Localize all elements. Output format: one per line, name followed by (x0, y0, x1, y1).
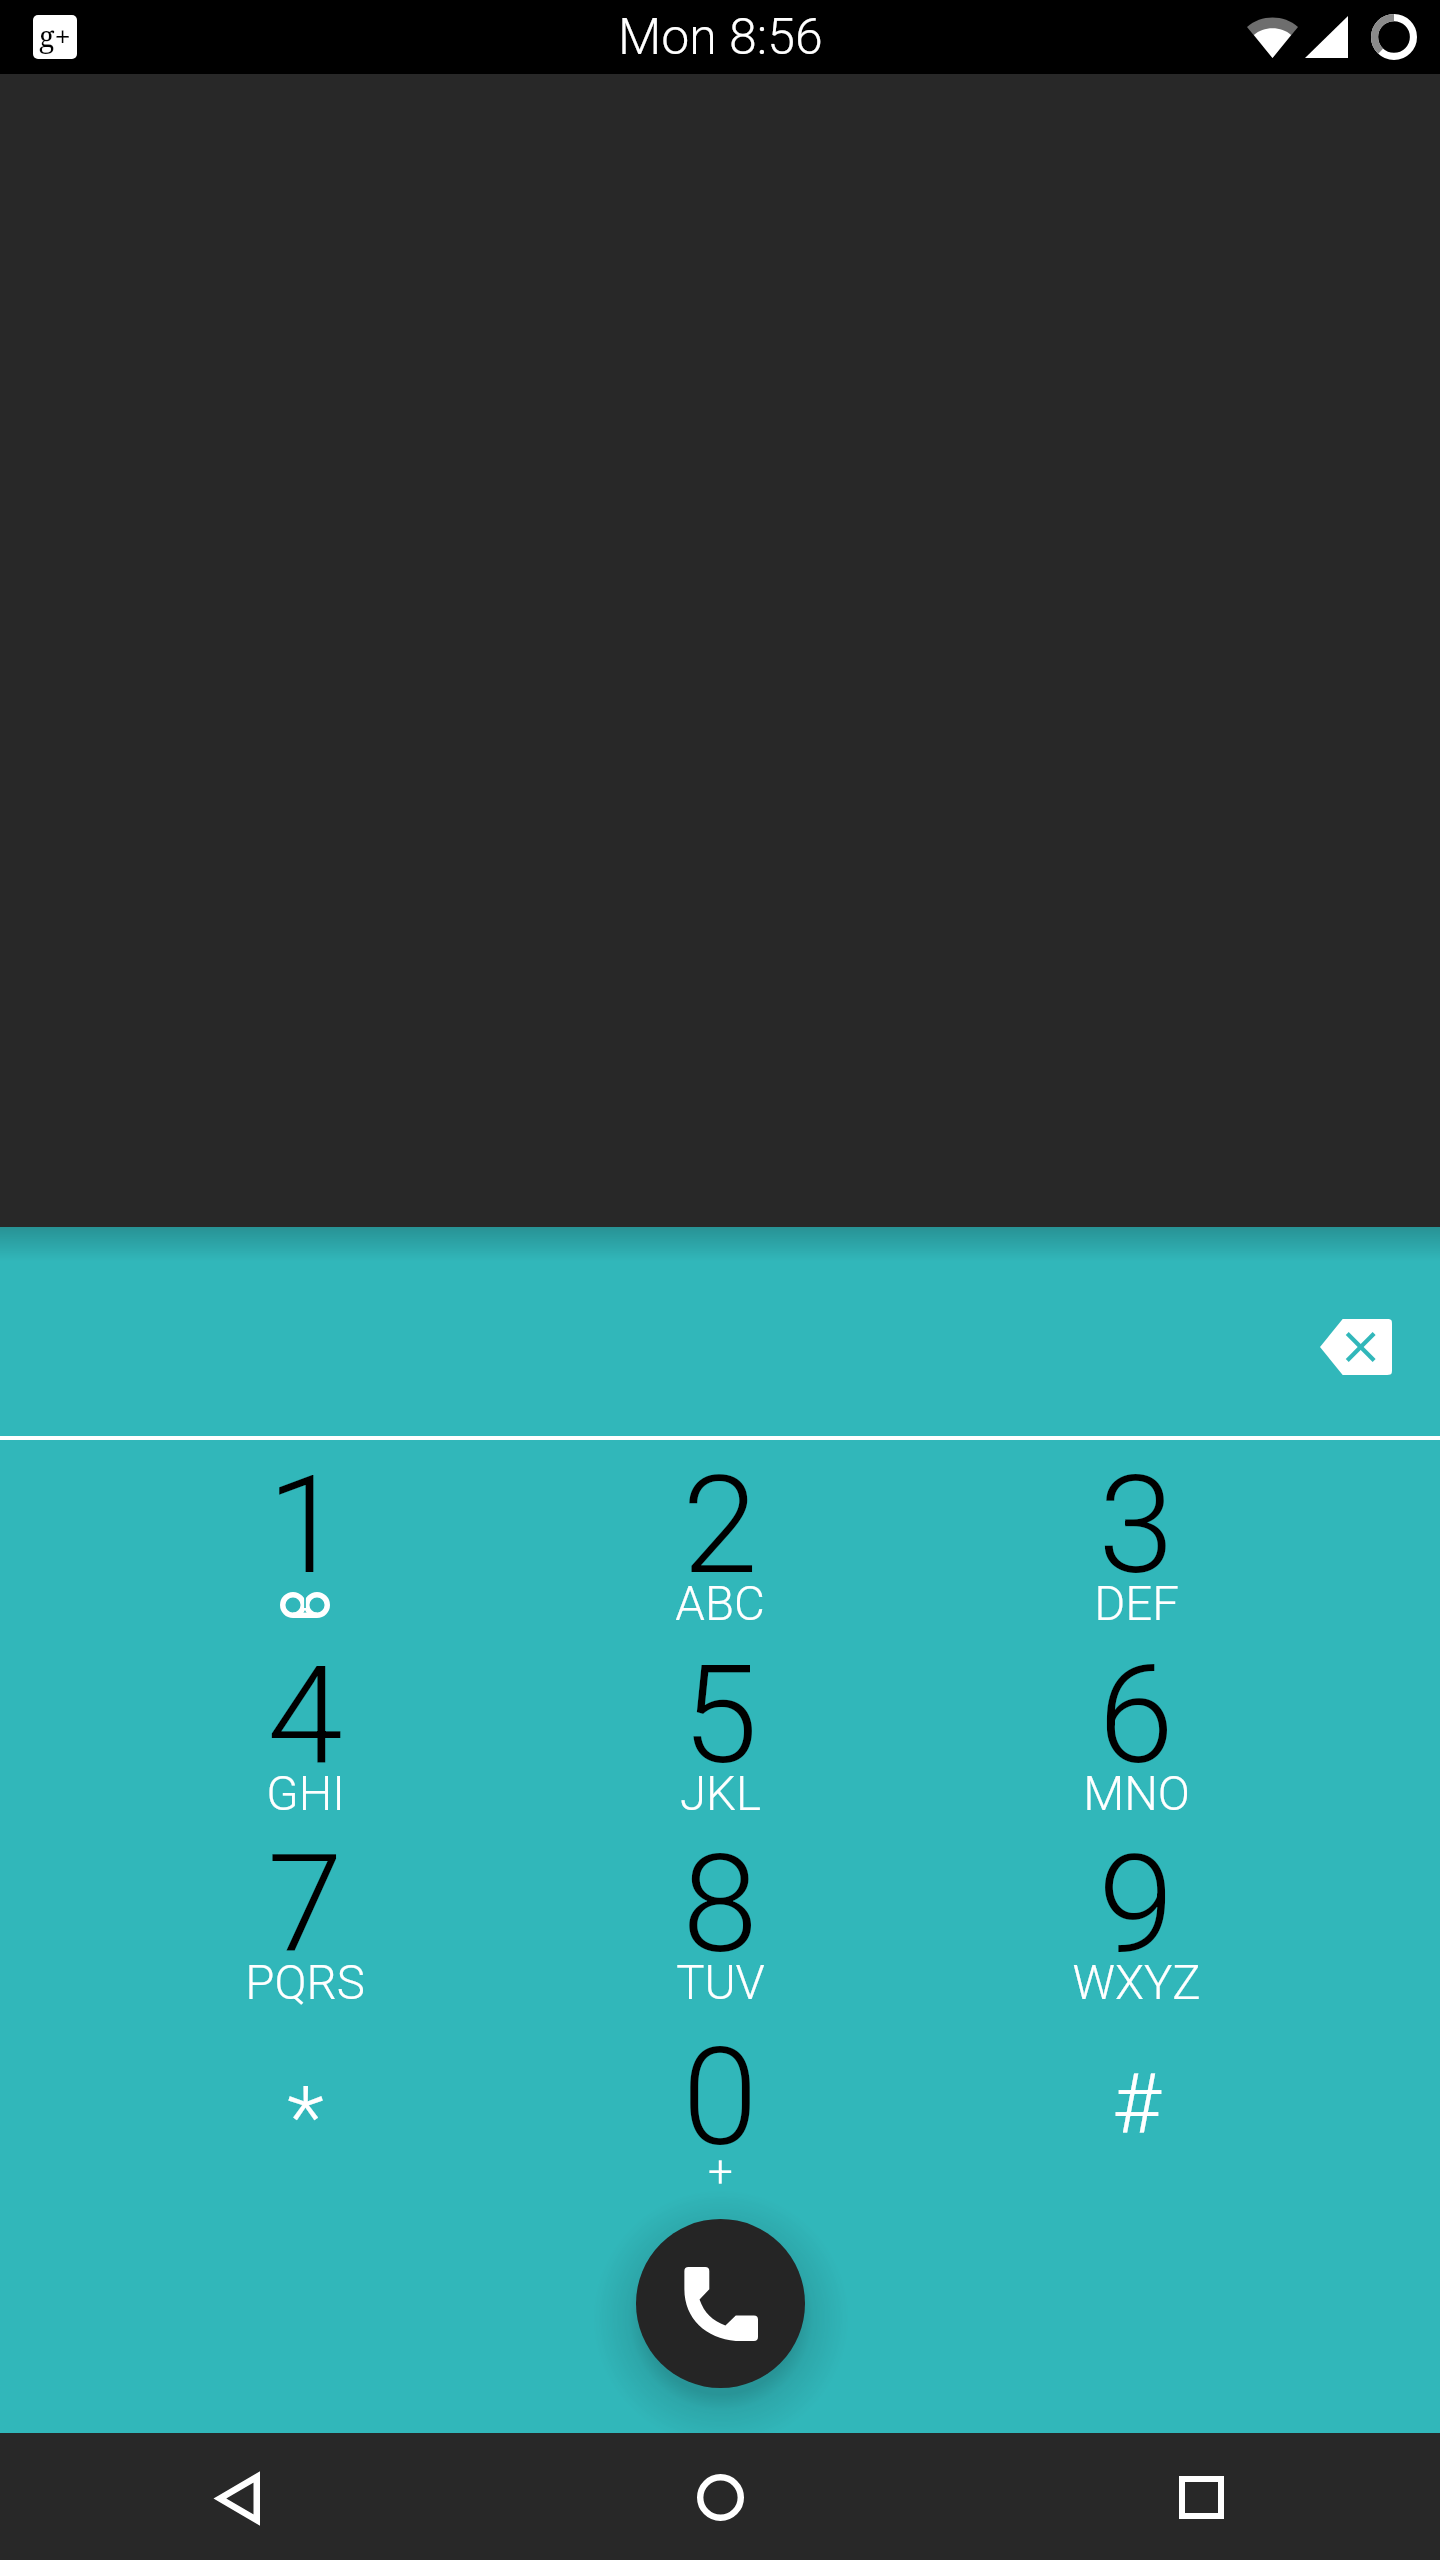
button[interactable]: Dial 5 (512, 1640, 928, 1830)
staticText: 8 (682, 1825, 758, 1985)
button[interactable]: Dial * (97, 2023, 513, 2213)
staticText: # (1112, 2056, 1161, 2154)
staticText: TUV (676, 1955, 765, 2011)
staticText: 6 (1098, 1636, 1174, 1796)
staticText: MNO (1083, 1766, 1190, 1822)
staticText: * (287, 2067, 324, 2168)
button[interactable]: Backspace (1286, 1291, 1426, 1403)
staticText: g+ (39, 16, 71, 55)
staticText: 1 (267, 1446, 343, 1606)
staticText: 3 (1098, 1446, 1174, 1606)
button[interactable]: Dial # (928, 2023, 1344, 2213)
button[interactable]: Dial 2 (512, 1451, 928, 1641)
staticText: 5 (682, 1636, 758, 1796)
staticText: 0 (682, 2018, 758, 2178)
button[interactable]: Dial 3 (928, 1451, 1344, 1641)
staticText: 9 (1098, 1825, 1174, 1985)
button[interactable]: Dial 6 (928, 1640, 1344, 1830)
button[interactable]: Call (636, 2219, 805, 2388)
staticText: 4 (267, 1636, 343, 1796)
button[interactable]: Dial 8 (512, 1829, 928, 2019)
button[interactable]: Dial 0 (512, 2023, 928, 2213)
staticText: JKL (680, 1766, 761, 1822)
button[interactable]: Home (650, 2437, 790, 2557)
staticText: 7 (267, 1825, 343, 1985)
staticText: ABC (675, 1576, 765, 1632)
button[interactable]: Dial 7 (97, 1829, 513, 2019)
staticText: WXYZ (1072, 1955, 1201, 2011)
staticText: + (708, 2146, 733, 2198)
button[interactable]: Recents (1131, 2437, 1271, 2557)
button[interactable]: Dial 4 (97, 1640, 513, 1830)
staticText: Mon 8:56 (618, 8, 823, 67)
staticText: DEF (1094, 1576, 1179, 1632)
staticText: PQRS (245, 1955, 365, 2011)
button[interactable]: Back (168, 2438, 308, 2558)
staticText: 2 (682, 1446, 758, 1606)
button[interactable]: Dial 9 (928, 1829, 1344, 2019)
staticText: GHI (266, 1766, 345, 1822)
button[interactable]: Dial 1 (97, 1451, 513, 1641)
